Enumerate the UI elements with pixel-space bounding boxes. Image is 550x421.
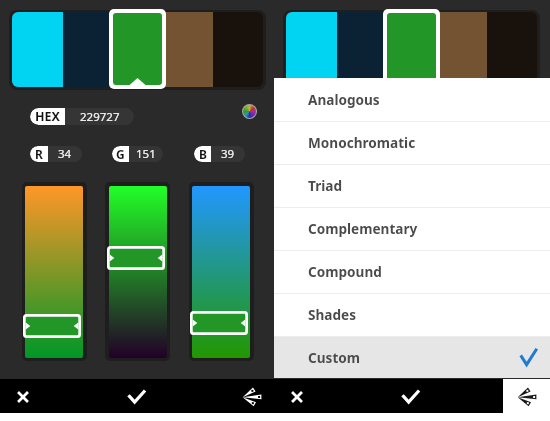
button[interactable]: G: [386, 146, 437, 162]
staticText: 151: [410, 146, 430, 162]
button[interactable]: [25, 186, 83, 358]
button[interactable]: G: [112, 146, 163, 162]
button[interactable]: Monochromatic: [274, 121, 550, 164]
button[interactable]: Cancel: [8, 382, 37, 411]
button[interactable]: Triad: [274, 164, 550, 207]
button[interactable]: HEX: [30, 108, 134, 125]
button[interactable]: Custom: [274, 336, 550, 378]
button[interactable]: Back: [512, 382, 541, 411]
button[interactable]: HEX: [304, 108, 408, 125]
staticText: HEX: [35, 108, 60, 125]
button[interactable]: Confirm: [122, 382, 151, 411]
staticText: B: [199, 146, 207, 162]
staticText: 151: [136, 146, 156, 162]
button[interactable]: Analogous: [274, 78, 550, 121]
button[interactable]: Cancel: [282, 382, 311, 411]
staticText: Compound: [308, 262, 382, 281]
staticText: 34: [58, 146, 72, 162]
button[interactable]: B: [194, 146, 245, 162]
staticText: 39: [221, 146, 235, 162]
button[interactable]: [63, 12, 113, 87]
staticText: 229727: [80, 109, 120, 125]
button[interactable]: [387, 12, 437, 87]
staticText: 34: [332, 146, 346, 162]
staticText: Triad: [308, 176, 343, 195]
button[interactable]: [383, 9, 440, 89]
button[interactable]: [383, 186, 441, 358]
button[interactable]: [109, 186, 167, 358]
staticText: 229727: [354, 109, 394, 125]
button[interactable]: Shades: [274, 293, 550, 336]
button[interactable]: Back: [237, 382, 266, 411]
button[interactable]: [337, 12, 387, 87]
button[interactable]: [163, 12, 213, 87]
button[interactable]: Confirm: [396, 382, 425, 411]
button[interactable]: [192, 186, 250, 358]
staticText: HEX: [309, 108, 334, 125]
button[interactable]: [12, 12, 63, 87]
button[interactable]: R: [30, 146, 82, 162]
staticText: Monochromatic: [308, 133, 416, 152]
staticText: Complementary: [308, 219, 418, 238]
button[interactable]: [466, 186, 524, 358]
button[interactable]: R: [304, 146, 356, 162]
staticText: R: [309, 146, 317, 162]
button[interactable]: [487, 12, 537, 87]
staticText: Custom: [308, 348, 361, 367]
button[interactable]: [286, 12, 337, 87]
button[interactable]: [299, 186, 357, 358]
button[interactable]: [113, 12, 163, 87]
button[interactable]: Color wheel: [242, 104, 257, 119]
staticText: Analogous: [308, 90, 380, 109]
button[interactable]: Complementary: [274, 207, 550, 250]
button[interactable]: [109, 9, 166, 89]
button[interactable]: [437, 12, 487, 87]
staticText: R: [35, 146, 43, 162]
staticText: Shades: [308, 305, 356, 324]
button[interactable]: Compound: [274, 250, 550, 293]
staticText: G: [116, 146, 125, 162]
staticText: G: [390, 146, 399, 162]
